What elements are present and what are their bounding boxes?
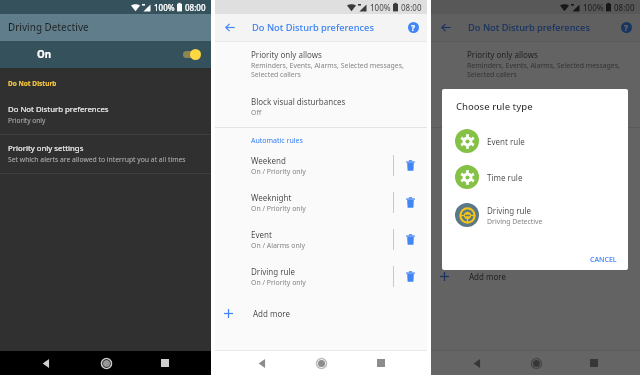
staticText: Driving Detective — [8, 21, 89, 34]
button[interactable]: Home — [523, 351, 549, 375]
staticText: Off — [467, 108, 478, 117]
staticText: On / Priority only — [251, 167, 306, 176]
button[interactable]: Help — [400, 14, 426, 41]
staticText: Selected callers — [467, 70, 517, 79]
staticText: Weekend — [467, 155, 502, 166]
staticText: Automatic rules — [251, 136, 303, 146]
button[interactable]: Event — [215, 221, 393, 258]
button[interactable]: Recents — [368, 351, 394, 375]
button[interactable]: Delete Driving rule — [394, 258, 427, 295]
button[interactable]: Recents — [581, 351, 607, 375]
staticText: Set which alerts are allowed to interrup… — [8, 155, 186, 164]
staticText: Priority only allows — [467, 49, 538, 60]
staticText: Do Not Disturb preferences — [468, 21, 590, 34]
staticText: ? — [624, 22, 629, 33]
button[interactable]: Home — [93, 351, 119, 375]
button[interactable]: Priority only allows — [215, 49, 427, 79]
staticText: Event rule — [487, 136, 525, 147]
staticText: On / Priority only — [467, 204, 522, 213]
staticText: Driving Detective — [487, 217, 543, 226]
button[interactable]: Driving rule — [442, 203, 628, 227]
button[interactable]: Home — [308, 351, 334, 375]
button[interactable]: Weekend — [215, 147, 393, 184]
staticText: Do Not Disturb preferences — [8, 104, 109, 115]
button[interactable]: Block visual disturbances — [431, 96, 640, 117]
button[interactable]: Add more — [215, 295, 427, 332]
button[interactable]: Back — [215, 14, 244, 41]
staticText: Add more — [469, 271, 507, 282]
button[interactable]: Back — [249, 351, 275, 375]
button[interactable]: CANCEL — [584, 251, 623, 269]
button[interactable]: Delete Weeknight — [394, 184, 427, 221]
staticText: 100% — [154, 2, 175, 13]
button[interactable]: Delete Weekend — [607, 147, 640, 184]
staticText: Selected callers — [251, 70, 301, 79]
button[interactable]: Event rule — [442, 129, 628, 153]
staticText: Weekend — [251, 155, 286, 166]
button[interactable]: Delete Event — [394, 221, 427, 258]
button[interactable]: Recents — [152, 351, 178, 375]
button[interactable]: Add more — [431, 258, 640, 295]
button[interactable]: Weeknight — [431, 184, 606, 221]
staticText: Driving rule — [251, 266, 296, 277]
staticText: On / Priority only — [467, 167, 522, 176]
button[interactable]: Do Not Disturb preferences — [0, 104, 211, 125]
button[interactable]: Time rule — [442, 165, 628, 189]
staticText: Block visual disturbances — [251, 96, 346, 107]
staticText: 100% — [583, 2, 604, 13]
staticText: Weeknight — [251, 192, 292, 203]
button[interactable]: Weekend — [431, 147, 606, 184]
staticText: 08:00 — [614, 2, 635, 13]
button[interactable]: Priority only allows — [431, 49, 640, 79]
staticText: Do Not Disturb — [8, 79, 57, 88]
staticText: Do Not Disturb preferences — [252, 21, 374, 34]
staticText: Block visual disturbances — [467, 96, 562, 107]
button[interactable]: Help — [613, 14, 639, 41]
staticText: Off — [251, 108, 262, 117]
staticText: 08:00 — [185, 2, 206, 13]
button[interactable]: Back — [33, 351, 59, 375]
staticText: On / Priority only — [251, 278, 306, 287]
staticText: 100% — [370, 2, 391, 13]
staticText: On — [37, 48, 52, 61]
staticText: Reminders, Events, Alarms, Selected mess… — [251, 61, 404, 70]
button[interactable]: Event — [431, 221, 606, 258]
staticText: On / Priority only — [251, 204, 306, 213]
button[interactable]: Back — [431, 14, 460, 41]
button[interactable]: Priority only settings — [0, 143, 211, 164]
staticText: 08:00 — [401, 2, 422, 13]
button[interactable]: Weeknight — [215, 184, 393, 221]
staticText: Time rule — [487, 172, 523, 183]
staticText: Choose rule type — [456, 100, 533, 113]
staticText: Reminders, Events, Alarms, Selected mess… — [467, 61, 620, 70]
button[interactable]: Block visual disturbances — [215, 96, 427, 117]
staticText: Driving rule — [487, 205, 532, 216]
staticText: Event — [251, 229, 272, 240]
staticText: CANCEL — [590, 255, 617, 265]
staticText: Add more — [253, 308, 291, 319]
staticText: Priority only — [8, 116, 46, 125]
button[interactable]: Back — [464, 351, 490, 375]
button[interactable]: Delete Event — [607, 221, 640, 258]
staticText: On / Alarms only — [251, 241, 305, 250]
button[interactable]: Delete Weeknight — [607, 184, 640, 221]
staticText: Automatic rules — [467, 136, 519, 146]
staticText: ? — [411, 22, 416, 33]
button[interactable]: Driving rule — [215, 258, 393, 295]
button[interactable]: On — [0, 41, 211, 68]
staticText: Priority only settings — [8, 143, 84, 154]
button[interactable]: Delete Weekend — [394, 147, 427, 184]
staticText: Priority only allows — [251, 49, 322, 60]
